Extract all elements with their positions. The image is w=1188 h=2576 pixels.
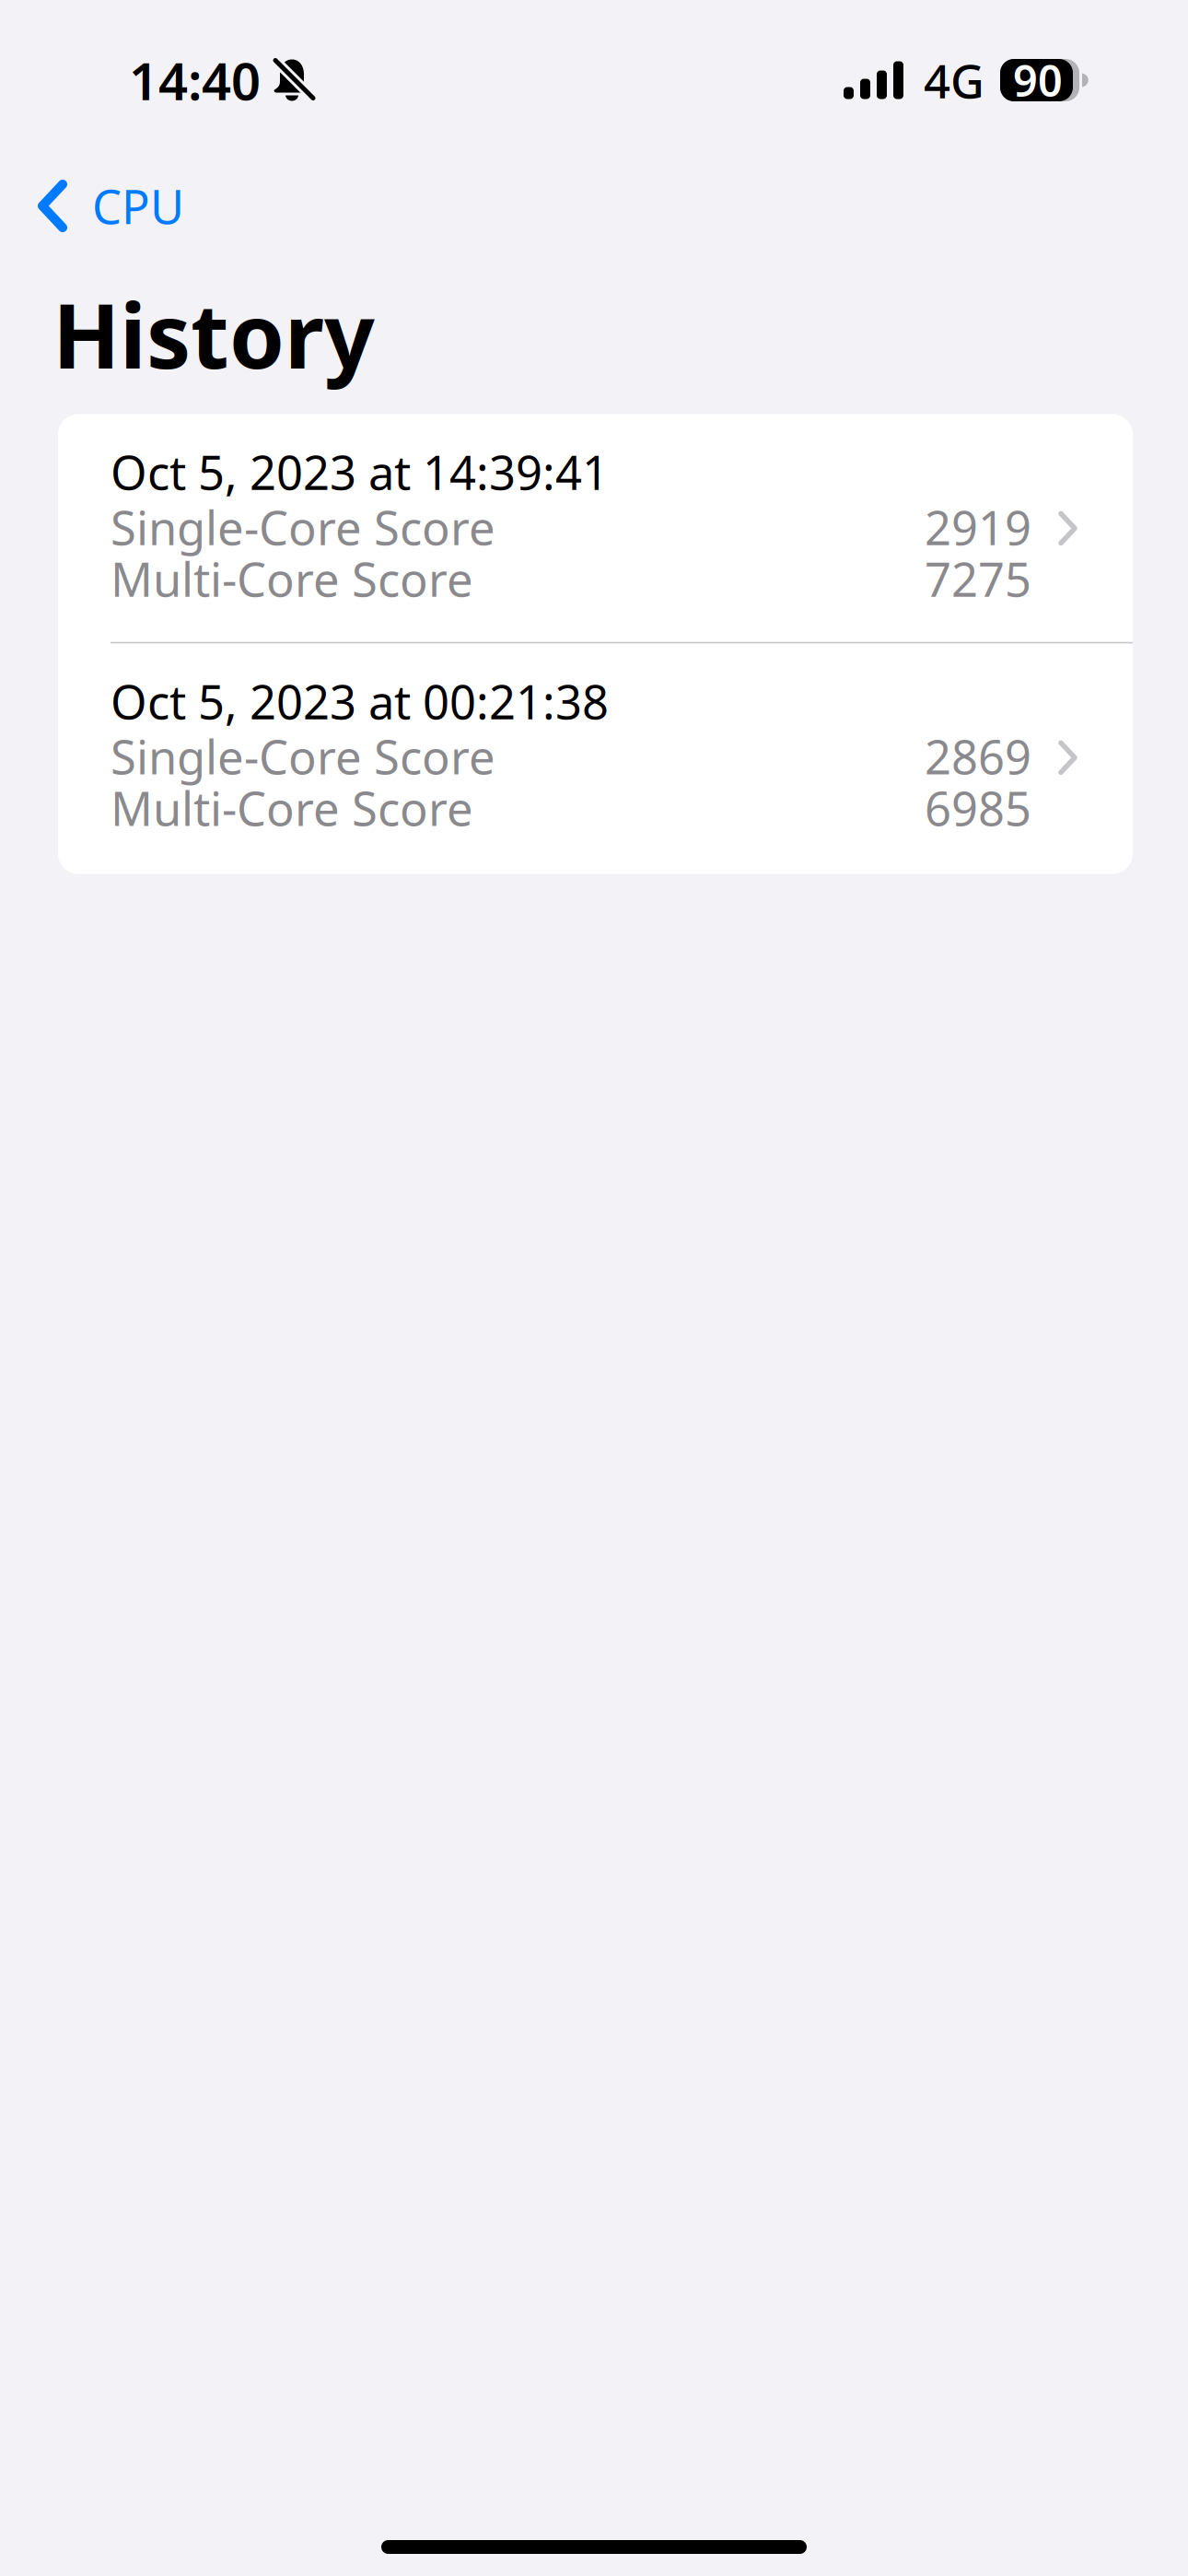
staticText: 7275 (925, 548, 1031, 610)
staticText: Single-Core Score (111, 496, 495, 558)
staticText: Oct 5, 2023 at 14:39:41 (111, 441, 609, 503)
staticText: 2919 (925, 496, 1031, 558)
staticText: Multi-Core Score (111, 548, 473, 610)
staticText: CPU (92, 175, 184, 237)
staticText: 90 (1013, 52, 1063, 109)
staticText: 14:40 (129, 46, 261, 114)
button[interactable]: Oct 5, 2023 at 14:39:41 (58, 414, 1133, 642)
staticText: 6985 (925, 777, 1031, 839)
button[interactable]: Back to CPU (0, 158, 1188, 246)
staticText: 2869 (925, 725, 1031, 787)
staticText: History (52, 275, 375, 393)
staticText: Single-Core Score (111, 725, 495, 787)
staticText: Multi-Core Score (111, 777, 473, 839)
staticText: 4G (924, 49, 984, 111)
staticText: Oct 5, 2023 at 00:21:38 (111, 670, 609, 732)
button[interactable]: Oct 5, 2023 at 00:21:38 (58, 643, 1133, 874)
